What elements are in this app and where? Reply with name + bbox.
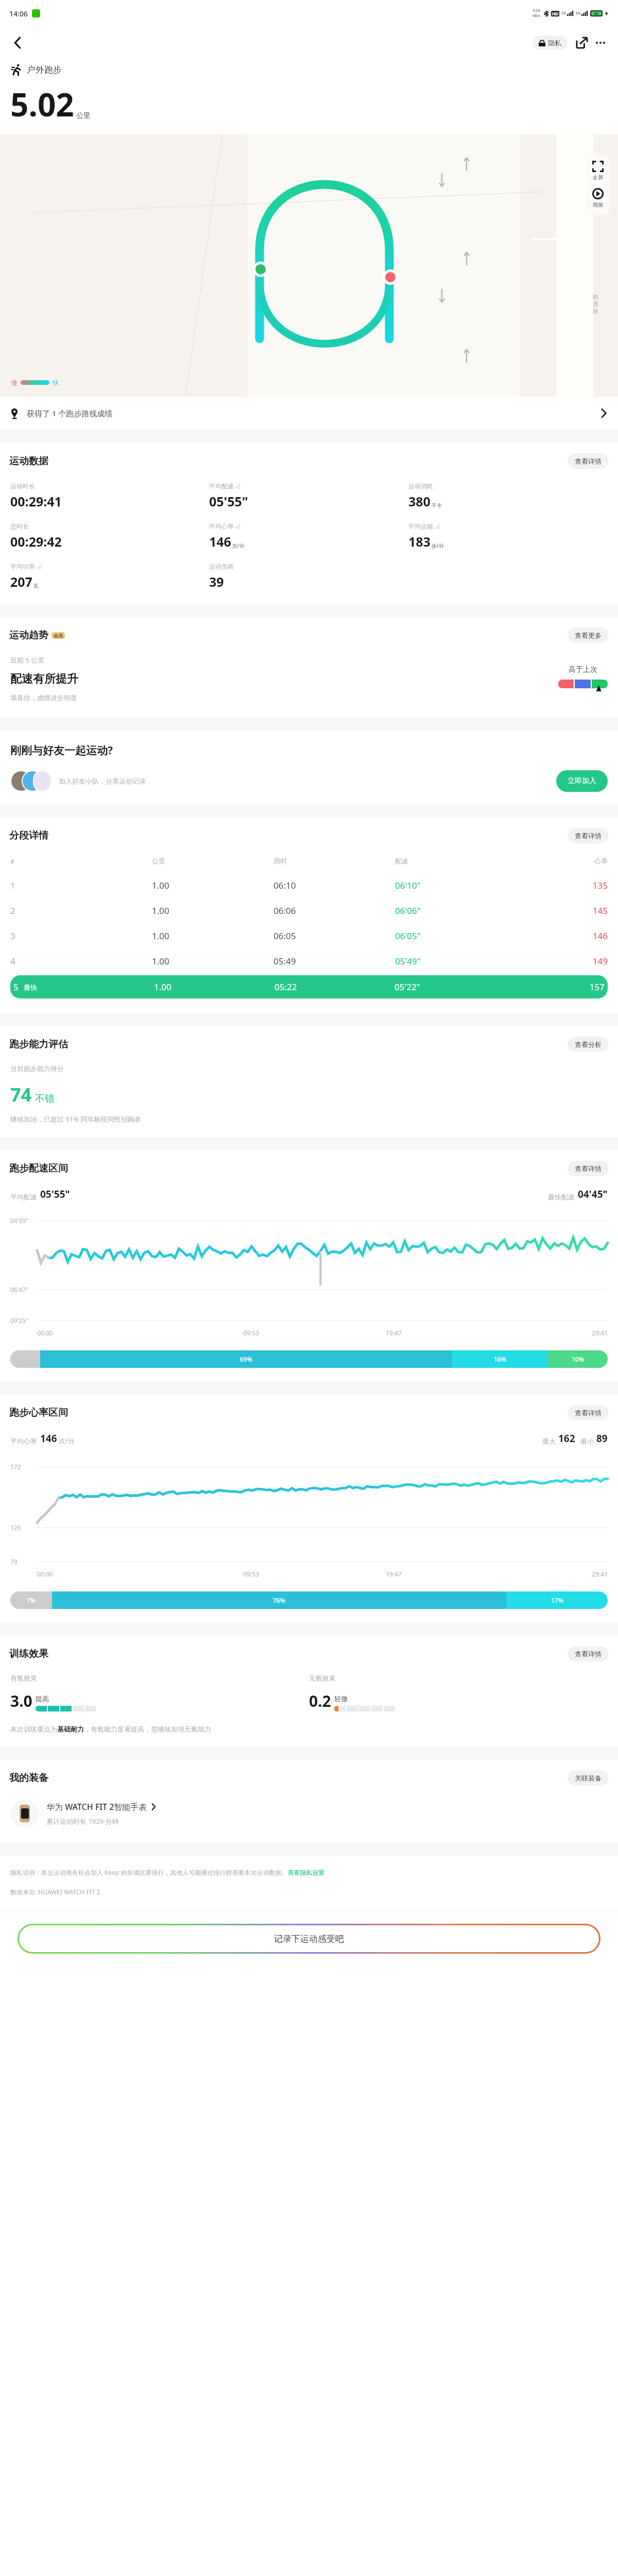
button[interactable]: 查看详情 xyxy=(568,1646,609,1662)
staticText: 当前跑步能力得分 xyxy=(10,1064,64,1073)
button[interactable]: 更多 xyxy=(591,33,610,52)
staticText: 207 xyxy=(10,573,32,590)
staticText: 跑步心率区间 xyxy=(9,1406,68,1419)
button[interactable]: 立即加入 xyxy=(556,770,608,792)
button[interactable]: 查看详情 xyxy=(568,1405,609,1420)
button[interactable]: 3 xyxy=(10,925,608,947)
staticText: 149 xyxy=(517,955,608,967)
button[interactable]: 2 xyxy=(10,900,608,922)
staticText: 183 xyxy=(408,533,431,550)
button[interactable]: 查看更多 xyxy=(568,628,609,643)
button[interactable]: 记录下运动感受吧 xyxy=(19,1925,599,1952)
staticText: 路 xyxy=(593,308,598,315)
staticText: 0.2 xyxy=(309,1690,331,1711)
staticText: HD xyxy=(552,11,558,16)
button[interactable]: 分享 xyxy=(573,33,591,52)
staticText: 户外跑步 xyxy=(27,64,62,75)
staticText: 运动消耗 xyxy=(408,482,433,490)
button[interactable]: 查看详情 xyxy=(568,828,609,843)
staticText: 总时长 xyxy=(10,522,29,530)
staticText: 次/分 xyxy=(59,1436,75,1445)
staticText: 146 xyxy=(209,533,231,550)
staticText: 隐私 xyxy=(548,39,561,47)
staticText: 跑步能力评估 xyxy=(9,1038,68,1050)
button[interactable]: 5 xyxy=(10,975,608,998)
staticText: 06:05 xyxy=(273,930,395,942)
staticText: 柏 xyxy=(593,293,598,300)
staticText: 89 xyxy=(596,1432,608,1445)
staticText: 视频 xyxy=(593,201,603,208)
staticText: 09:53 xyxy=(180,1570,322,1578)
staticText: 05:22 xyxy=(274,981,394,993)
staticText: 05'49" xyxy=(395,955,517,967)
staticText: 查看分析 xyxy=(575,1040,602,1048)
staticText: 刚刚与好友一起运动? xyxy=(10,743,113,758)
staticText: 00:29:41 xyxy=(10,493,62,510)
button[interactable]: 华为 WATCH FIT 2智能手表 xyxy=(0,1797,618,1830)
staticText: 06'10" xyxy=(395,879,517,891)
staticText: 39 xyxy=(209,573,224,590)
button[interactable]: 获得了 1 个跑步路线成绩 xyxy=(0,397,618,430)
staticText: 00:29:42 xyxy=(10,533,62,550)
staticText: 380 xyxy=(408,493,431,510)
staticText: 平均步频 xyxy=(408,522,433,530)
button[interactable]: 查看详情 xyxy=(568,1161,609,1176)
staticText: 公里 xyxy=(76,111,91,121)
staticText: 跑步配速区间 xyxy=(9,1162,68,1175)
staticText: 76% xyxy=(273,1596,285,1604)
staticText: 5 xyxy=(13,981,19,993)
staticText: 19:47 xyxy=(322,1570,465,1578)
staticText: 次/分 xyxy=(232,542,245,549)
staticText: 平均心率 xyxy=(10,1437,37,1445)
staticText: 06'47" xyxy=(10,1285,37,1294)
button[interactable]: 隐私 xyxy=(533,36,568,50)
staticText: 数据来自: HUAWEI WATCH FIT 2 xyxy=(10,1888,100,1896)
staticText: 1.00 xyxy=(154,981,274,993)
staticText: 隐私说明：本次运动将有机会加入 Keep 的各项比赛排行，其他人可能通过排行榜查… xyxy=(10,1868,325,1876)
button[interactable]: 返回 xyxy=(8,33,28,53)
button[interactable]: 视频 xyxy=(592,188,604,208)
staticText: 3 xyxy=(10,930,15,942)
staticText: 华为 WATCH FIT 2智能手表 xyxy=(46,1801,147,1812)
staticText: 5G xyxy=(561,11,566,16)
staticText: 157 xyxy=(514,981,605,993)
staticText: 19:47 xyxy=(322,1329,465,1337)
button[interactable]: 查看详情 xyxy=(568,453,609,469)
staticText: 09:53 xyxy=(180,1329,322,1337)
staticText: 平均配速 xyxy=(209,482,234,490)
staticText: 不错 xyxy=(35,1093,55,1105)
staticText: 累计运动时长 1929 分钟 xyxy=(46,1817,119,1826)
staticText: 最小 xyxy=(580,1437,594,1445)
button[interactable]: 查看分析 xyxy=(568,1037,609,1052)
staticText: 无氧效果 xyxy=(309,1674,336,1682)
staticText: 查看详情 xyxy=(575,1650,602,1658)
staticText: 29:41 xyxy=(465,1570,608,1578)
staticText: 心率 xyxy=(517,857,608,865)
staticText: 查看详情 xyxy=(575,832,602,840)
staticText: 最大 xyxy=(542,1437,556,1445)
staticText: 全屏 xyxy=(593,174,603,181)
button[interactable]: 全屏 xyxy=(592,161,604,181)
staticText: 10% xyxy=(572,1355,584,1363)
staticText: 05'22" xyxy=(394,981,514,993)
staticText: 1.00 xyxy=(152,879,273,891)
staticText: 配速 xyxy=(395,857,517,865)
staticText: 1.00 xyxy=(152,905,273,917)
staticText: 西 xyxy=(593,300,598,308)
staticText: 79 xyxy=(10,1557,37,1566)
staticText: 查看详情 xyxy=(575,1164,602,1173)
button[interactable]: 1 xyxy=(10,874,608,896)
button[interactable]: 关联装备 xyxy=(568,1770,609,1786)
staticText: 04'09" xyxy=(10,1216,37,1225)
staticText: 快 xyxy=(53,379,59,386)
button[interactable]: 4 xyxy=(10,950,608,972)
staticText: 提高 xyxy=(36,1694,49,1703)
staticText: 06'05" xyxy=(395,930,517,942)
staticText: 训练效果 xyxy=(9,1648,48,1660)
staticText: 06:10 xyxy=(273,879,395,891)
staticText: 最快配速 xyxy=(548,1193,575,1201)
staticText: 有氧效果 xyxy=(10,1674,37,1682)
staticText: 运动数据 xyxy=(9,455,48,467)
staticText: 本次训练重点为基础耐力，有氧能力显著提高，需继续加强无氧能力 xyxy=(10,1725,211,1733)
staticText: 关联装备 xyxy=(575,1774,602,1782)
